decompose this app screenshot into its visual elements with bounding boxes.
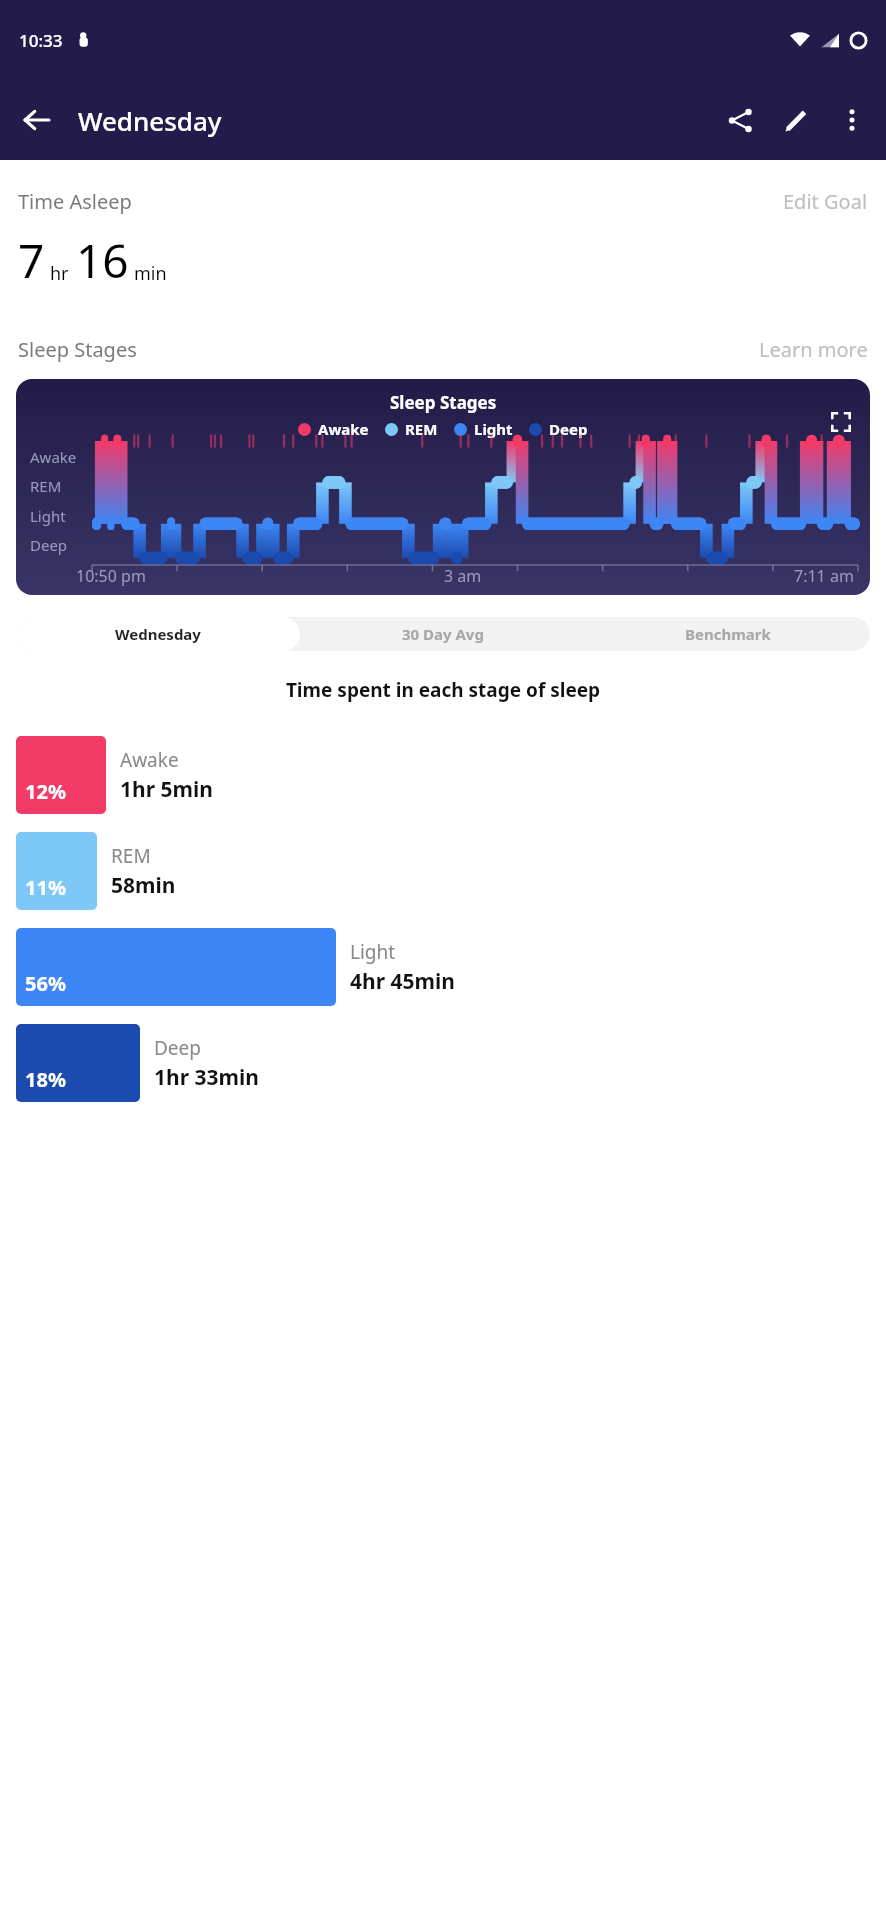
staticText: Time Asleep — [18, 188, 132, 215]
button[interactable]: 30 Day Avg — [300, 617, 585, 651]
button[interactable]: Edit Goal — [783, 188, 868, 215]
button[interactable]: Benchmark — [585, 617, 870, 651]
staticText: Deep — [154, 1035, 201, 1061]
staticText: Light — [350, 939, 396, 965]
button[interactable]: Share — [712, 92, 768, 148]
staticText: Awake — [120, 747, 179, 773]
staticText: min — [134, 261, 167, 286]
button[interactable]: Back — [8, 92, 64, 148]
staticText: REM — [111, 843, 151, 869]
button[interactable]: Expand chart — [826, 407, 856, 437]
staticText: Awake — [30, 447, 77, 467]
staticText: 30 Day Avg — [402, 624, 484, 644]
button[interactable]: 56% — [16, 925, 870, 1009]
staticText: Light — [30, 506, 66, 526]
staticText: Sleep Stages — [18, 336, 137, 363]
staticText: 4hr 45min — [350, 967, 455, 996]
staticText: REM — [30, 476, 62, 496]
staticText: 56% — [25, 970, 66, 997]
staticText: 12% — [25, 778, 66, 805]
staticText: 7 — [18, 229, 45, 292]
staticText: Deep — [549, 419, 588, 439]
button[interactable]: 12% — [16, 733, 870, 817]
staticText: Awake — [318, 419, 369, 439]
staticText: Deep — [30, 535, 68, 555]
button[interactable]: Edit — [768, 92, 824, 148]
staticText: Benchmark — [685, 624, 771, 644]
staticText: 11% — [25, 874, 66, 901]
staticText: Light — [474, 419, 513, 439]
staticText: 10:33 — [19, 29, 63, 52]
staticText: Wednesday — [78, 103, 222, 138]
staticText: 1hr 5min — [120, 775, 213, 804]
button[interactable]: 18% — [16, 1021, 870, 1105]
button[interactable]: Wednesday — [16, 617, 300, 651]
button[interactable]: 11% — [16, 829, 870, 913]
button[interactable]: More options — [824, 92, 880, 148]
staticText: 16 — [76, 229, 129, 292]
staticText: 10:50 pm — [76, 565, 146, 587]
staticText: REM — [405, 419, 438, 439]
staticText: 3 am — [444, 565, 482, 587]
button[interactable]: Sleep Stages — [16, 379, 870, 595]
staticText: Sleep Stages — [390, 391, 497, 414]
staticText: hr — [50, 261, 69, 286]
staticText: Wednesday — [115, 624, 201, 644]
staticText: 1hr 33min — [154, 1063, 259, 1092]
staticText: 58min — [111, 871, 176, 900]
staticText: 18% — [25, 1066, 66, 1093]
button[interactable]: Learn more — [759, 336, 868, 363]
staticText: 7:11 am — [794, 565, 854, 587]
staticText: Time spent in each stage of sleep — [0, 677, 886, 703]
